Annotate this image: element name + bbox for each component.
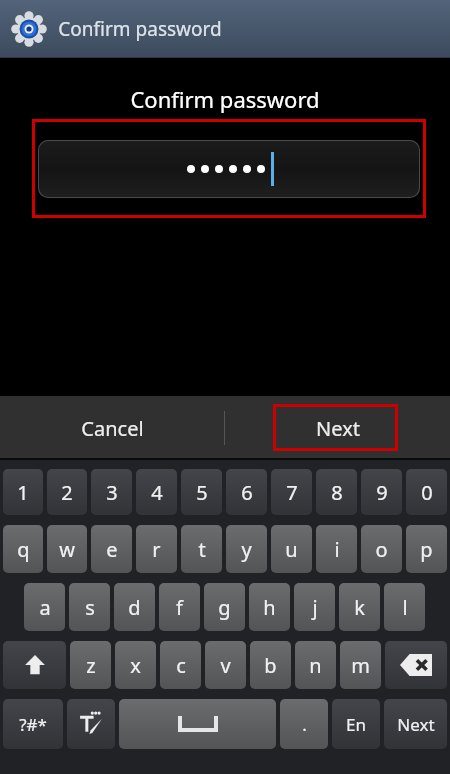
staticText: f [176,594,183,621]
staticText: o [375,536,388,563]
button[interactable]: p [406,525,447,573]
button[interactable]: c [160,641,201,689]
staticText: 8 [331,479,343,506]
staticText: i [334,536,340,563]
staticText: 0 [421,479,433,506]
button[interactable]: 9 [361,469,402,515]
staticText: v [220,652,231,679]
button[interactable]: o [361,525,402,573]
button[interactable]: 8 [316,469,357,515]
button[interactable] [38,140,420,198]
button[interactable]: 4 [136,469,177,515]
button[interactable]: l [384,583,425,631]
staticText: k [354,594,365,621]
staticText: Next [316,415,360,442]
button[interactable]: k [339,583,380,631]
button[interactable]: g [204,583,245,631]
button[interactable]: b [250,641,291,689]
staticText: z [86,652,96,679]
staticText: r [152,536,161,563]
button[interactable]: Space [119,699,276,749]
staticText: p [420,536,433,563]
button[interactable]: 0 [406,469,447,515]
staticText: 1 [17,479,29,506]
staticText: . [302,713,307,736]
button[interactable]: 5 [181,469,222,515]
button[interactable]: Settings [10,10,48,48]
staticText: 2 [61,479,73,506]
staticText: 9 [376,479,388,506]
staticText: q [17,536,30,563]
staticText: u [285,536,298,563]
staticText: t [198,536,206,563]
staticText: 4 [151,479,163,506]
button[interactable]: s [69,583,110,631]
button[interactable]: x [115,641,156,689]
button[interactable]: d [114,583,155,631]
staticText: l [402,594,408,621]
button[interactable]: t [181,525,222,573]
button[interactable]: z [70,641,111,689]
staticText: s [85,594,95,621]
staticText: a [39,594,51,621]
staticText: Confirm password [58,16,222,42]
staticText: n [309,652,322,679]
button[interactable]: q [3,525,43,573]
staticText: Confirm password [130,84,320,114]
staticText: En [346,713,366,736]
staticText: 7 [286,479,298,506]
staticText: j [312,594,318,621]
button[interactable]: En [332,699,380,749]
staticText: c [176,652,186,679]
button[interactable]: e [91,525,132,573]
button[interactable]: Handwriting [67,699,115,749]
button[interactable]: Backspace [385,641,447,689]
staticText: w [59,536,75,563]
staticText: y [241,536,252,563]
staticText: e [106,536,118,563]
staticText: 3 [106,479,118,506]
staticText: d [128,594,141,621]
button[interactable]: 6 [226,469,267,515]
button[interactable]: r [136,525,177,573]
button[interactable]: Cancel [0,396,224,460]
button[interactable]: u [271,525,312,573]
button[interactable]: Shift [3,641,66,689]
button[interactable]: Next [384,699,447,749]
button[interactable]: a [24,583,65,631]
button[interactable]: h [249,583,290,631]
button[interactable]: 1 [3,469,43,515]
button[interactable]: 2 [47,469,87,515]
button[interactable]: m [340,641,381,689]
button[interactable]: v [205,641,246,689]
button[interactable]: . [280,699,328,749]
button[interactable]: y [226,525,267,573]
button[interactable]: n [295,641,336,689]
staticText: Next [397,713,435,736]
staticText: m [351,652,370,679]
staticText: g [218,594,231,621]
button[interactable]: f [159,583,200,631]
button[interactable]: j [294,583,335,631]
button[interactable]: Next [225,396,450,460]
staticText: 6 [241,479,253,506]
staticText: 5 [196,479,208,506]
staticText: x [130,652,141,679]
button[interactable]: i [316,525,357,573]
button[interactable]: w [47,525,87,573]
staticText: ?#* [19,713,47,736]
staticText: h [263,594,276,621]
staticText: b [264,652,277,679]
button[interactable]: ?#* [3,699,63,749]
button[interactable]: 3 [91,469,132,515]
staticText: Cancel [81,415,144,442]
button[interactable]: 7 [271,469,312,515]
